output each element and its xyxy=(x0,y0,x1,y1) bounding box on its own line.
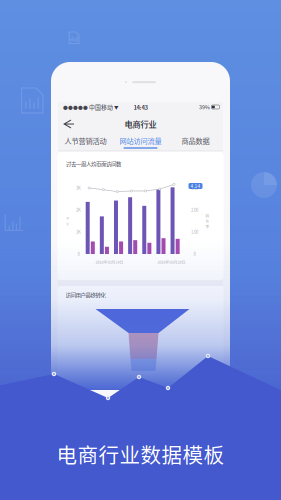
staticText: ▼ xyxy=(114,104,119,110)
staticText: 转 化 率 xyxy=(205,213,209,229)
button[interactable]: 人节营销活动 xyxy=(58,135,113,149)
staticText: 3K xyxy=(76,185,81,191)
staticText: 2K xyxy=(76,207,81,213)
staticText: 1.00 xyxy=(191,229,198,235)
staticText: 2018年03月14日 xyxy=(95,259,123,265)
staticText: 人节营销活动 xyxy=(64,135,106,146)
staticText: 过去一周人均页面访问数 xyxy=(66,160,121,168)
staticText: 电商行业数据模板 xyxy=(56,439,224,469)
staticText: 2.00 xyxy=(191,207,198,213)
staticText: 网站访问流量 xyxy=(119,135,161,146)
staticText: P V xyxy=(66,215,68,227)
staticText: 14:43 xyxy=(133,103,147,111)
staticText: 39% xyxy=(199,103,210,111)
staticText: 商品数据 xyxy=(181,135,209,146)
staticText: 4.14 xyxy=(190,182,200,189)
staticText: 1K xyxy=(76,229,81,235)
staticText: ●●●●● xyxy=(63,103,88,110)
staticText: 2018年03月20日 xyxy=(157,259,185,265)
staticText: 访问用户最终转化 xyxy=(65,291,105,299)
button[interactable]: Back xyxy=(58,115,80,133)
staticText: 3.00 xyxy=(191,185,198,191)
staticText: 0 xyxy=(77,251,79,257)
button[interactable]: 网站访问流量 xyxy=(113,135,168,149)
staticText: 中国移动 xyxy=(88,103,114,111)
staticText: 0 xyxy=(193,251,195,257)
staticText: 电商行业 xyxy=(124,118,156,130)
button[interactable]: 商品数据 xyxy=(168,135,223,149)
